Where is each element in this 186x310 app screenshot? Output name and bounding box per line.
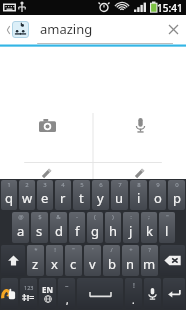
button[interactable]: 0 bbox=[168, 180, 185, 210]
staticText: $ bbox=[38, 213, 42, 221]
staticText: o bbox=[154, 189, 162, 207]
staticText: j bbox=[129, 222, 133, 240]
staticText: 3 bbox=[43, 181, 47, 189]
button[interactable]: Space bbox=[77, 278, 123, 309]
staticText: 9 bbox=[156, 181, 160, 189]
staticText: w bbox=[22, 189, 33, 207]
staticText: k bbox=[146, 222, 153, 240]
staticText: 5 bbox=[80, 181, 84, 189]
button[interactable]: / bbox=[103, 245, 120, 276]
staticText: : bbox=[130, 213, 132, 221]
button[interactable]: 3 bbox=[37, 180, 53, 210]
staticText: 6 bbox=[99, 181, 103, 189]
button[interactable]: 9 bbox=[149, 180, 166, 210]
button[interactable]: Enter bbox=[163, 278, 185, 309]
staticText: – bbox=[65, 281, 69, 291]
button[interactable]: 6 bbox=[92, 180, 109, 210]
button[interactable]: Comma bbox=[58, 278, 75, 309]
staticText: v bbox=[89, 255, 96, 273]
button[interactable]: & bbox=[50, 212, 67, 243]
button[interactable]: ; bbox=[141, 212, 157, 243]
button[interactable]: Gesture typing bbox=[1, 278, 18, 309]
staticText: 8 bbox=[137, 181, 141, 189]
button[interactable]: " bbox=[159, 212, 175, 243]
staticText: EN bbox=[42, 284, 53, 295]
staticText: b bbox=[108, 255, 116, 273]
staticText: * bbox=[34, 246, 38, 254]
button[interactable]: : bbox=[123, 212, 139, 243]
staticText: 2 bbox=[25, 181, 29, 189]
button[interactable]: Clear query bbox=[160, 15, 186, 43]
staticText: + bbox=[129, 246, 133, 254]
staticText: z bbox=[32, 255, 39, 273]
staticText: d bbox=[55, 222, 63, 240]
staticText: . bbox=[132, 293, 135, 307]
staticText: a bbox=[17, 222, 25, 240]
button[interactable]: Handwriting bbox=[41, 168, 52, 179]
button[interactable]: Voice search bbox=[120, 105, 160, 145]
button[interactable]: ! bbox=[46, 245, 63, 276]
staticText: / bbox=[110, 246, 113, 254]
staticText: g bbox=[91, 222, 99, 240]
button[interactable]: App icon bbox=[0, 15, 34, 43]
staticText: ' bbox=[92, 246, 94, 254]
staticText: u bbox=[115, 189, 124, 207]
staticText: x bbox=[51, 255, 58, 273]
staticText: y bbox=[97, 189, 104, 207]
staticText: 1 bbox=[7, 181, 11, 189]
staticText: q bbox=[5, 189, 13, 207]
staticText: 0 bbox=[175, 181, 179, 189]
button[interactable]: 4 bbox=[55, 180, 71, 210]
staticText: " bbox=[166, 213, 169, 221]
staticText: 4 bbox=[61, 181, 65, 189]
button[interactable]: @ bbox=[12, 212, 29, 243]
button[interactable]: ( bbox=[87, 212, 103, 243]
button[interactable]: Shift bbox=[1, 245, 25, 276]
staticText: - bbox=[76, 213, 78, 221]
button[interactable]: " bbox=[65, 245, 82, 276]
staticText: " bbox=[72, 246, 75, 254]
staticText: amazing bbox=[40, 20, 160, 38]
button[interactable]: ? bbox=[141, 245, 158, 276]
button[interactable]: 5 bbox=[73, 180, 90, 210]
button[interactable]: Voice input bbox=[144, 278, 161, 309]
staticText: e bbox=[41, 189, 49, 207]
button[interactable]: Backspace bbox=[160, 245, 185, 276]
button[interactable]: * bbox=[27, 245, 44, 276]
button[interactable]: 1 bbox=[1, 180, 17, 210]
staticText: h bbox=[109, 222, 118, 240]
staticText: n bbox=[126, 255, 135, 273]
staticText: ! bbox=[54, 246, 56, 254]
button[interactable]: Draw bbox=[134, 168, 145, 179]
button[interactable]: 8 bbox=[130, 180, 147, 210]
button[interactable]: $ bbox=[31, 212, 48, 243]
staticText: 7 bbox=[118, 181, 122, 189]
button[interactable]: ' bbox=[84, 245, 101, 276]
staticText: r bbox=[60, 189, 66, 207]
button[interactable]: 2 bbox=[19, 180, 35, 210]
staticText: & bbox=[56, 213, 61, 221]
staticText: s bbox=[36, 222, 43, 240]
staticText: ‡!= bbox=[22, 291, 35, 303]
staticText: ) bbox=[112, 213, 114, 221]
button[interactable]: Symbols bbox=[20, 278, 37, 309]
staticText: ; bbox=[148, 213, 150, 221]
button[interactable]: Change language bbox=[39, 278, 56, 309]
button[interactable]: ) bbox=[105, 212, 121, 243]
staticText: t bbox=[79, 189, 84, 207]
staticText: 123 bbox=[24, 284, 34, 291]
staticText: c bbox=[70, 255, 77, 273]
staticText: i bbox=[137, 189, 141, 207]
staticText: ! bbox=[133, 281, 135, 291]
button[interactable]: + bbox=[122, 245, 139, 276]
staticText: @ bbox=[18, 213, 24, 221]
staticText: m bbox=[143, 255, 156, 273]
button[interactable]: Search by image bbox=[27, 105, 67, 145]
staticText: ( bbox=[94, 213, 96, 221]
button[interactable]: Period bbox=[125, 278, 142, 309]
staticText: l bbox=[165, 222, 169, 240]
staticText: ? bbox=[148, 246, 151, 254]
button[interactable]: - bbox=[69, 212, 85, 243]
staticText: p bbox=[173, 189, 181, 207]
button[interactable]: 7 bbox=[111, 180, 128, 210]
